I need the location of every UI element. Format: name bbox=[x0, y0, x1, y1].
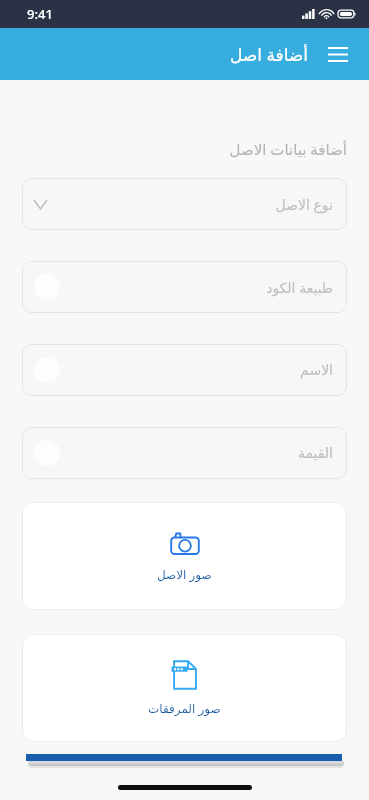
button[interactable]: القيمة bbox=[22, 427, 347, 479]
staticText: أضافة بيانات الاصل bbox=[229, 139, 347, 159]
staticText: 9:41 bbox=[27, 5, 53, 23]
staticText: القيمة bbox=[297, 445, 333, 461]
staticText: الاسم bbox=[300, 362, 333, 378]
button[interactable]: نوع الاصل bbox=[22, 178, 347, 230]
staticText: صور المرفقات bbox=[148, 700, 221, 716]
button[interactable]: صور المرفقات bbox=[22, 634, 347, 742]
staticText: نوع الاصل bbox=[275, 195, 333, 214]
staticText: صور الاصل bbox=[157, 566, 212, 582]
button[interactable]: Menu bbox=[321, 37, 355, 71]
staticText: أضافة اصل bbox=[230, 43, 309, 66]
button[interactable]: صور الاصل bbox=[22, 502, 347, 610]
button[interactable]: الاسم bbox=[22, 344, 347, 396]
staticText: طبيعة الكود bbox=[266, 278, 333, 297]
button[interactable]: طبيعة الكود bbox=[22, 261, 347, 313]
